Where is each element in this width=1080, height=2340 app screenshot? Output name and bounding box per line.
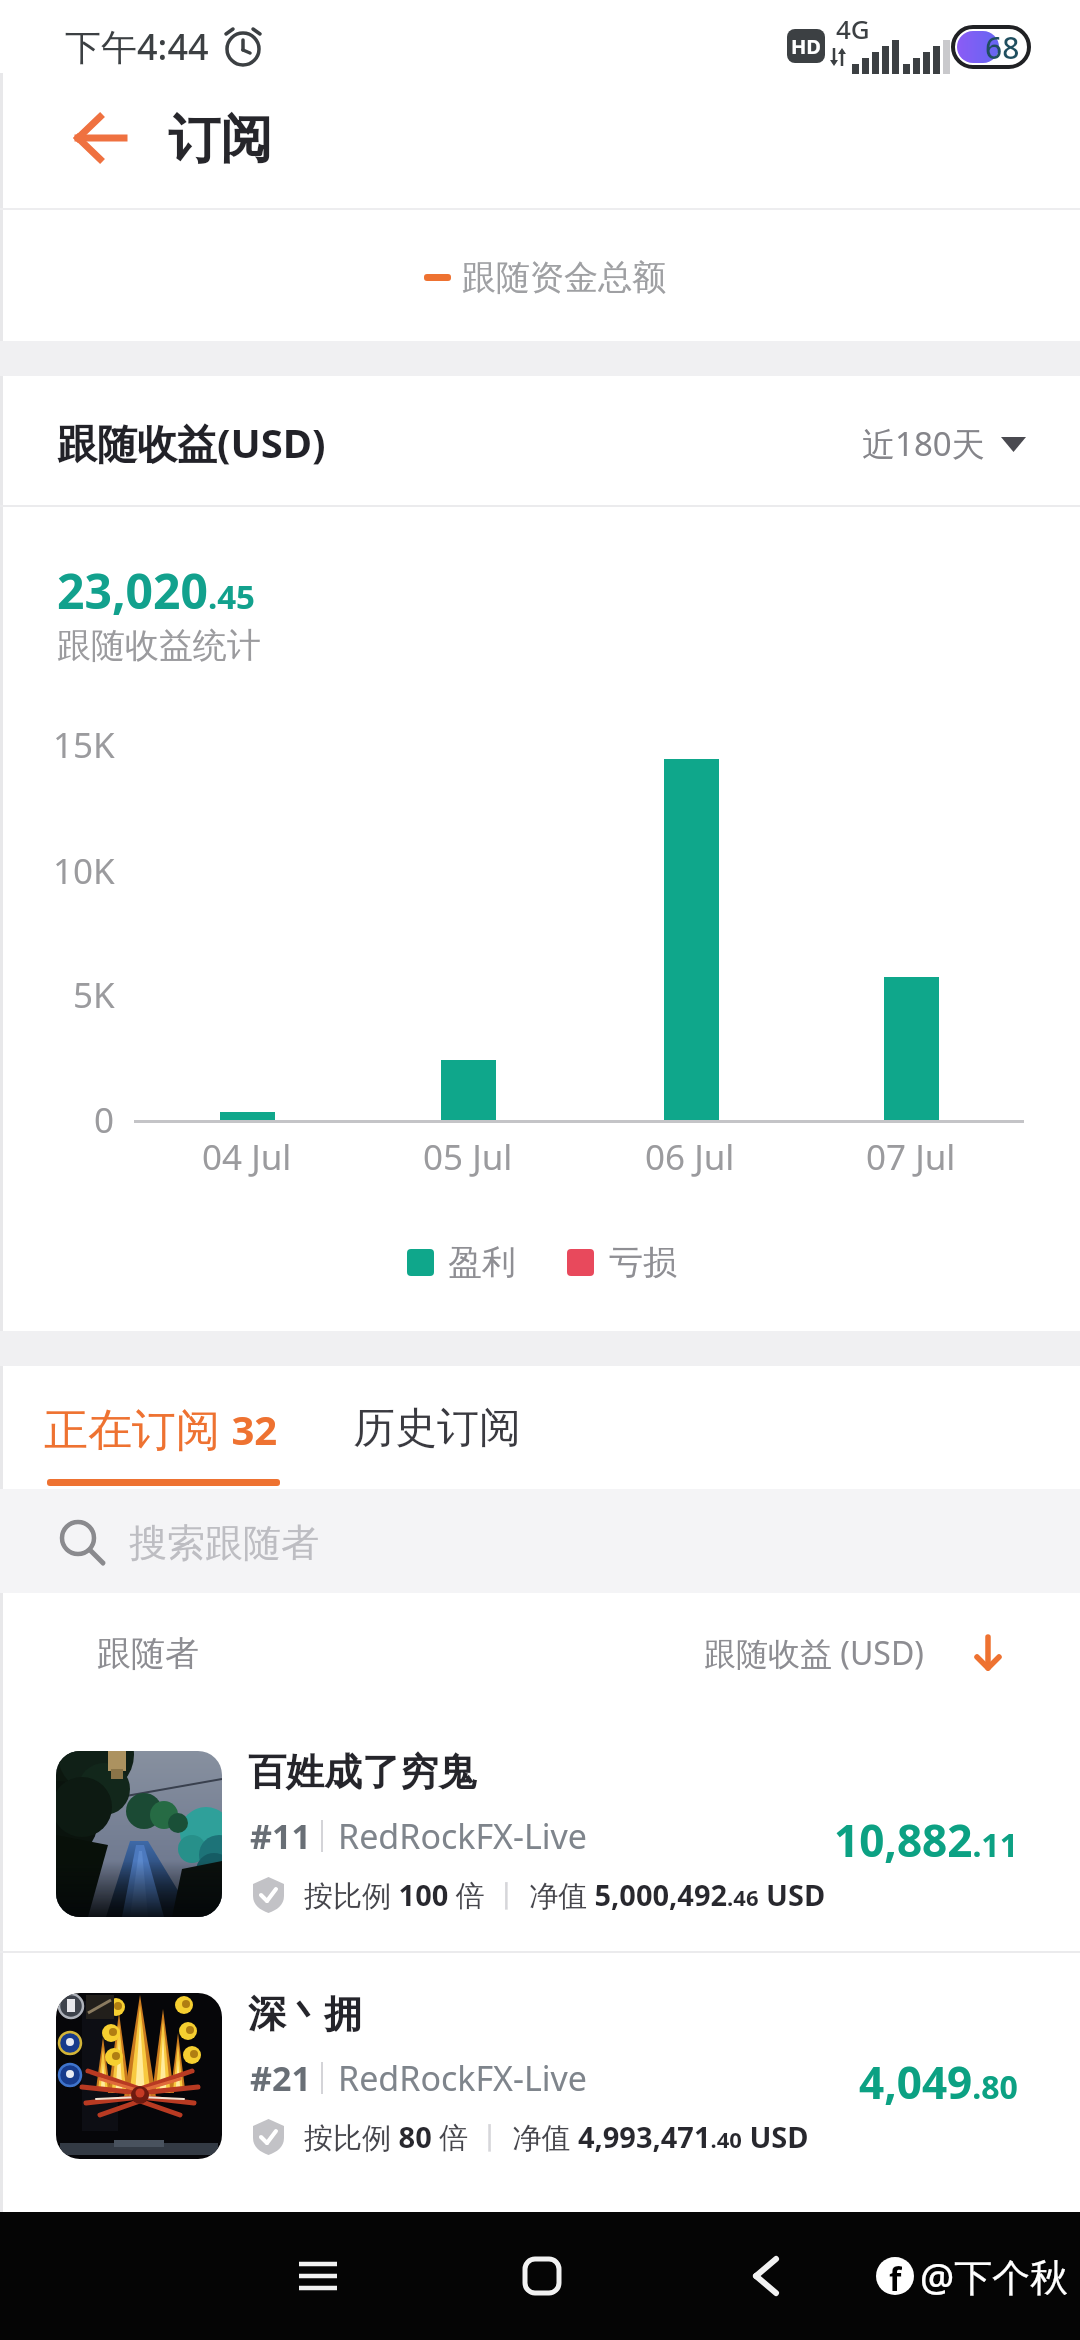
staticText: 盈利 bbox=[448, 1241, 516, 1284]
button[interactable] bbox=[0, 1722, 1080, 1946]
staticText: 按比例 100 倍 丨 净值 5,000,492.46 USD bbox=[304, 1875, 826, 1915]
staticText: 15K bbox=[53, 721, 115, 769]
staticText: 按比例 80 倍 丨 净值 4,993,471.40 USD bbox=[304, 2117, 809, 2157]
button[interactable] bbox=[523, 2257, 561, 2295]
staticText: 05 Jul bbox=[423, 1133, 513, 1181]
staticText: HD bbox=[791, 33, 821, 60]
staticText: 5K bbox=[73, 971, 115, 1019]
staticText: @下个秋 bbox=[920, 2250, 1069, 2302]
staticText: 68 bbox=[985, 27, 1020, 67]
staticText: RedRockFX-Live bbox=[338, 2055, 587, 2101]
button[interactable]: 搜索跟随者 bbox=[0, 1489, 1080, 1593]
button[interactable]: 历史订阅 bbox=[353, 1388, 521, 1468]
staticText: 10K bbox=[53, 847, 115, 895]
staticText: 订阅 bbox=[168, 107, 272, 173]
staticText: 跟随收益(USD) bbox=[57, 415, 326, 470]
staticText: 跟随资金总额 bbox=[462, 256, 666, 299]
staticText: f bbox=[889, 2257, 902, 2295]
staticText: 历史订阅 bbox=[353, 1402, 521, 1455]
button[interactable] bbox=[0, 1964, 1080, 2188]
staticText: 跟随收益 (USD) bbox=[704, 1631, 924, 1675]
staticText: #21 bbox=[250, 2055, 311, 2101]
staticText: 深丶拥 bbox=[248, 1990, 362, 2038]
button[interactable]: 正在订阅 32 bbox=[44, 1388, 278, 1468]
staticText: RedRockFX-Live bbox=[338, 1813, 587, 1859]
staticText: 07 Jul bbox=[866, 1133, 956, 1181]
staticText: 23,020.45 bbox=[57, 558, 255, 623]
staticText: 正在订阅 32 bbox=[44, 1398, 278, 1458]
staticText: 下午4:44 bbox=[65, 22, 209, 71]
staticText: 4,049.80 bbox=[859, 2052, 1018, 2112]
staticText: 跟随收益统计 bbox=[57, 624, 261, 667]
staticText: 06 Jul bbox=[645, 1133, 735, 1181]
staticText: 百姓成了穷鬼 bbox=[248, 1748, 476, 1796]
staticText: 亏损 bbox=[609, 1241, 677, 1284]
button[interactable] bbox=[748, 2257, 786, 2295]
staticText: 0 bbox=[94, 1096, 115, 1144]
button[interactable] bbox=[74, 112, 126, 164]
staticText: 跟随者 bbox=[97, 1632, 199, 1675]
staticText: 搜索跟随者 bbox=[129, 1519, 319, 1567]
staticText: 4G bbox=[836, 11, 870, 41]
button[interactable]: 近180天 bbox=[700, 403, 985, 483]
button[interactable] bbox=[299, 2262, 337, 2290]
button[interactable] bbox=[973, 1635, 1003, 1673]
staticText: 10,882.11 bbox=[834, 1810, 1018, 1870]
staticText: 04 Jul bbox=[202, 1133, 292, 1181]
staticText: #11 bbox=[250, 1813, 311, 1859]
staticText: 近180天 bbox=[862, 421, 985, 466]
